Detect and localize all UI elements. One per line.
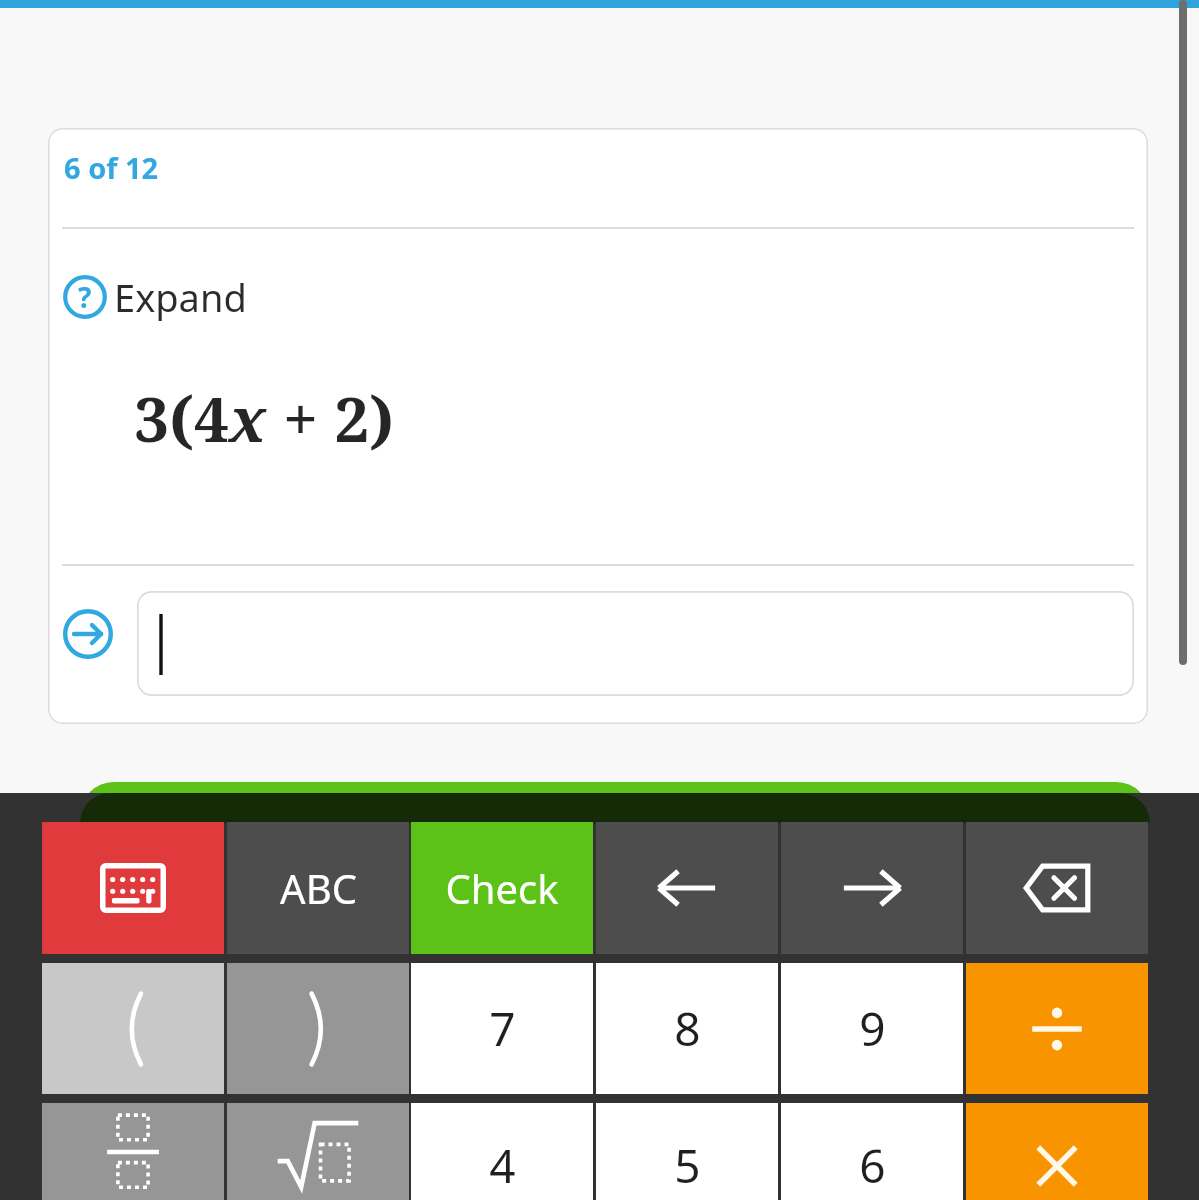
button[interactable]: Move left [596,822,778,954]
button[interactable]: Submit answer [62,608,114,660]
button[interactable]: Check [411,822,593,954]
button[interactable]: ABC [227,822,409,954]
staticText: 5 [674,1134,701,1197]
button[interactable]: Backspace [966,822,1148,954]
button[interactable]: Square root [227,1103,409,1200]
staticText: 3(4 [134,376,229,460]
button[interactable] [42,963,224,1094]
button[interactable]: 5 [596,1103,778,1200]
staticText: ? [78,278,92,316]
staticText: 6 of 12 [64,148,159,187]
staticText: Expand [114,271,247,323]
button[interactable]: 6 [781,1103,963,1200]
button[interactable] [137,591,1134,696]
staticText: 6 [859,1134,886,1197]
button[interactable]: 7 [411,963,593,1094]
staticText: Check [445,861,559,915]
button[interactable]: Expand [62,267,247,327]
staticText: ABC [280,861,357,915]
button[interactable]: 8 [596,963,778,1094]
button[interactable]: Fraction [42,1103,224,1200]
staticText: x [229,376,267,460]
button[interactable]: Divide [966,963,1148,1094]
staticText: 4 [489,1134,516,1197]
button[interactable]: Keyboard [42,822,224,954]
staticText: 7 [489,997,516,1060]
staticText: 9 [859,997,886,1060]
button[interactable]: 9 [781,963,963,1094]
button[interactable] [227,963,409,1094]
button[interactable]: Multiply [966,1103,1148,1200]
button[interactable]: Move right [781,822,963,954]
staticText: 8 [674,997,701,1060]
staticText: + 2) [267,376,395,460]
button[interactable]: 4 [411,1103,593,1200]
